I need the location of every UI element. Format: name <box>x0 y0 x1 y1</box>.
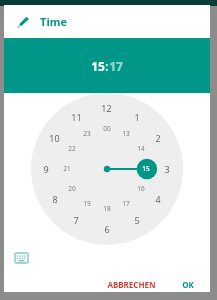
staticText: 15 <box>142 164 150 173</box>
staticText: 3 <box>164 163 170 175</box>
staticText: 6 <box>104 223 110 235</box>
staticText: 19 <box>83 199 91 208</box>
staticText: 5 <box>134 214 140 226</box>
staticText: 18 <box>103 204 111 213</box>
staticText: : <box>105 58 109 74</box>
staticText: 23 <box>83 129 91 138</box>
staticText: 13 <box>122 129 130 138</box>
staticText: 4 <box>155 193 161 205</box>
staticText: ABBRECHEN <box>107 279 156 288</box>
staticText: Time <box>40 14 67 29</box>
staticText: 20 <box>68 184 76 193</box>
staticText: 22 <box>68 144 76 153</box>
staticText: 17 <box>109 58 123 74</box>
button[interactable]: 15 <box>91 58 105 74</box>
staticText: 11 <box>71 111 82 123</box>
staticText: 10 <box>49 132 60 144</box>
staticText: 15 <box>91 58 105 74</box>
button[interactable]: OK <box>174 275 202 292</box>
staticText: 12 <box>101 102 112 114</box>
button[interactable]: ABBRECHEN <box>99 275 164 292</box>
staticText: 2 <box>155 132 161 144</box>
staticText: 17 <box>122 199 130 208</box>
button[interactable]: 17 <box>109 58 123 74</box>
button[interactable]: Edit <box>4 5 210 38</box>
staticText: 9 <box>43 163 49 175</box>
staticText: 8 <box>52 193 58 205</box>
other: Edit <box>16 15 30 29</box>
staticText: OK <box>182 279 194 288</box>
staticText: 14 <box>137 144 145 153</box>
staticText: 00 <box>103 124 111 133</box>
staticText: 16 <box>137 184 145 193</box>
button[interactable]: Switch to text input <box>12 249 30 267</box>
button[interactable] <box>4 93 210 245</box>
staticText: 1 <box>134 111 140 123</box>
staticText: 7 <box>73 214 79 226</box>
staticText: 21 <box>63 164 71 173</box>
